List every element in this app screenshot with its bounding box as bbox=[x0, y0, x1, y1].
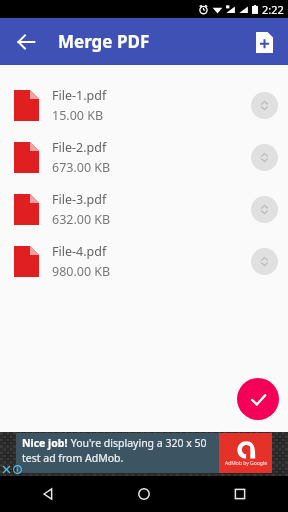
staticText: 632.00 KB bbox=[52, 211, 111, 228]
staticText: test ad from AdMob. bbox=[22, 451, 124, 465]
button[interactable]: Home bbox=[96, 476, 192, 512]
staticText: AdMob by Google bbox=[225, 460, 267, 467]
button[interactable]: Reorder bbox=[251, 196, 278, 223]
button[interactable]: File-4.pdf bbox=[0, 235, 288, 287]
button[interactable]: Reorder bbox=[251, 248, 278, 275]
staticText: 2:22 bbox=[262, 2, 284, 17]
button[interactable]: Recents bbox=[192, 476, 288, 512]
button[interactable]: Reorder bbox=[251, 144, 278, 171]
button[interactable]: Merge bbox=[237, 378, 279, 420]
staticText: Nice job! bbox=[22, 436, 68, 450]
button[interactable]: Nice job! bbox=[0, 432, 288, 476]
button[interactable]: Ad info bbox=[12, 464, 23, 475]
button[interactable]: Reorder bbox=[251, 92, 278, 119]
staticText: File-1.pdf bbox=[52, 87, 107, 104]
staticText: File-2.pdf bbox=[52, 139, 107, 156]
button[interactable]: File-2.pdf bbox=[0, 131, 288, 183]
staticText: Merge PDF bbox=[58, 30, 150, 53]
staticText: File-4.pdf bbox=[52, 243, 107, 260]
button[interactable]: File-3.pdf bbox=[0, 183, 288, 235]
staticText: You're displaying a 320 x 50 bbox=[68, 436, 207, 450]
button[interactable]: Close ad bbox=[1, 464, 12, 475]
staticText: File-3.pdf bbox=[52, 191, 107, 208]
staticText: 15.00 KB bbox=[52, 107, 104, 124]
button[interactable]: File-1.pdf bbox=[0, 79, 288, 131]
button[interactable]: Add file bbox=[246, 24, 282, 60]
button[interactable]: Back bbox=[8, 24, 44, 60]
button[interactable]: Back bbox=[0, 476, 96, 512]
staticText: 673.00 KB bbox=[52, 159, 111, 176]
staticText: 980.00 KB bbox=[52, 263, 111, 280]
